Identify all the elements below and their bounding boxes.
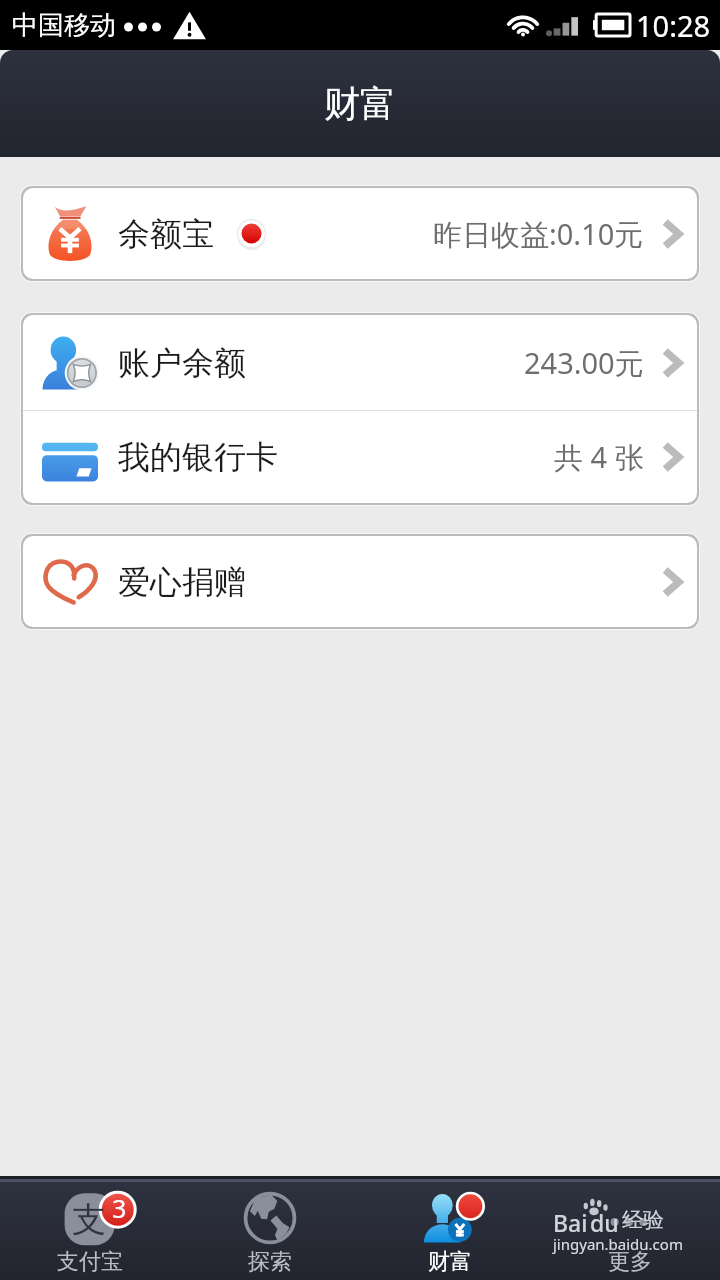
staticText: 243.00元 — [524, 343, 644, 383]
staticText: jingyan.baidu.com — [553, 1234, 683, 1254]
button[interactable]: 支付宝 — [0, 1182, 180, 1280]
staticText: 昨日收益:0.10元 — [433, 214, 644, 254]
staticText: du — [590, 1207, 619, 1234]
staticText: 共 4 张 — [554, 437, 644, 477]
button[interactable]: 我的银行卡 — [23, 411, 697, 503]
staticText: 探索 — [248, 1248, 292, 1276]
button[interactable]: 余额宝 — [23, 188, 697, 279]
staticText: Bai — [553, 1207, 588, 1234]
staticText: 中国移动 — [12, 9, 116, 42]
staticText: 余额宝 — [118, 214, 214, 254]
staticText: 10:28 — [636, 6, 711, 45]
staticText: 支付宝 — [57, 1248, 123, 1276]
button[interactable]: 账户余额 — [23, 315, 697, 410]
staticText: 账户余额 — [118, 343, 246, 383]
staticText: 爱心捐赠 — [118, 562, 246, 602]
staticText: 更多 — [608, 1248, 652, 1276]
button[interactable]: 探索 — [180, 1182, 360, 1280]
staticText: 经验 — [622, 1207, 664, 1233]
staticText: 支 — [72, 1198, 106, 1241]
button[interactable]: 财富 — [360, 1182, 540, 1280]
button[interactable]: 爱心捐赠 — [23, 536, 697, 627]
button[interactable]: 更多 — [540, 1182, 720, 1280]
staticText: 财富 — [324, 81, 396, 126]
staticText: 财富 — [428, 1248, 472, 1276]
staticText: 3 — [112, 1191, 127, 1225]
staticText: 我的银行卡 — [118, 437, 278, 477]
